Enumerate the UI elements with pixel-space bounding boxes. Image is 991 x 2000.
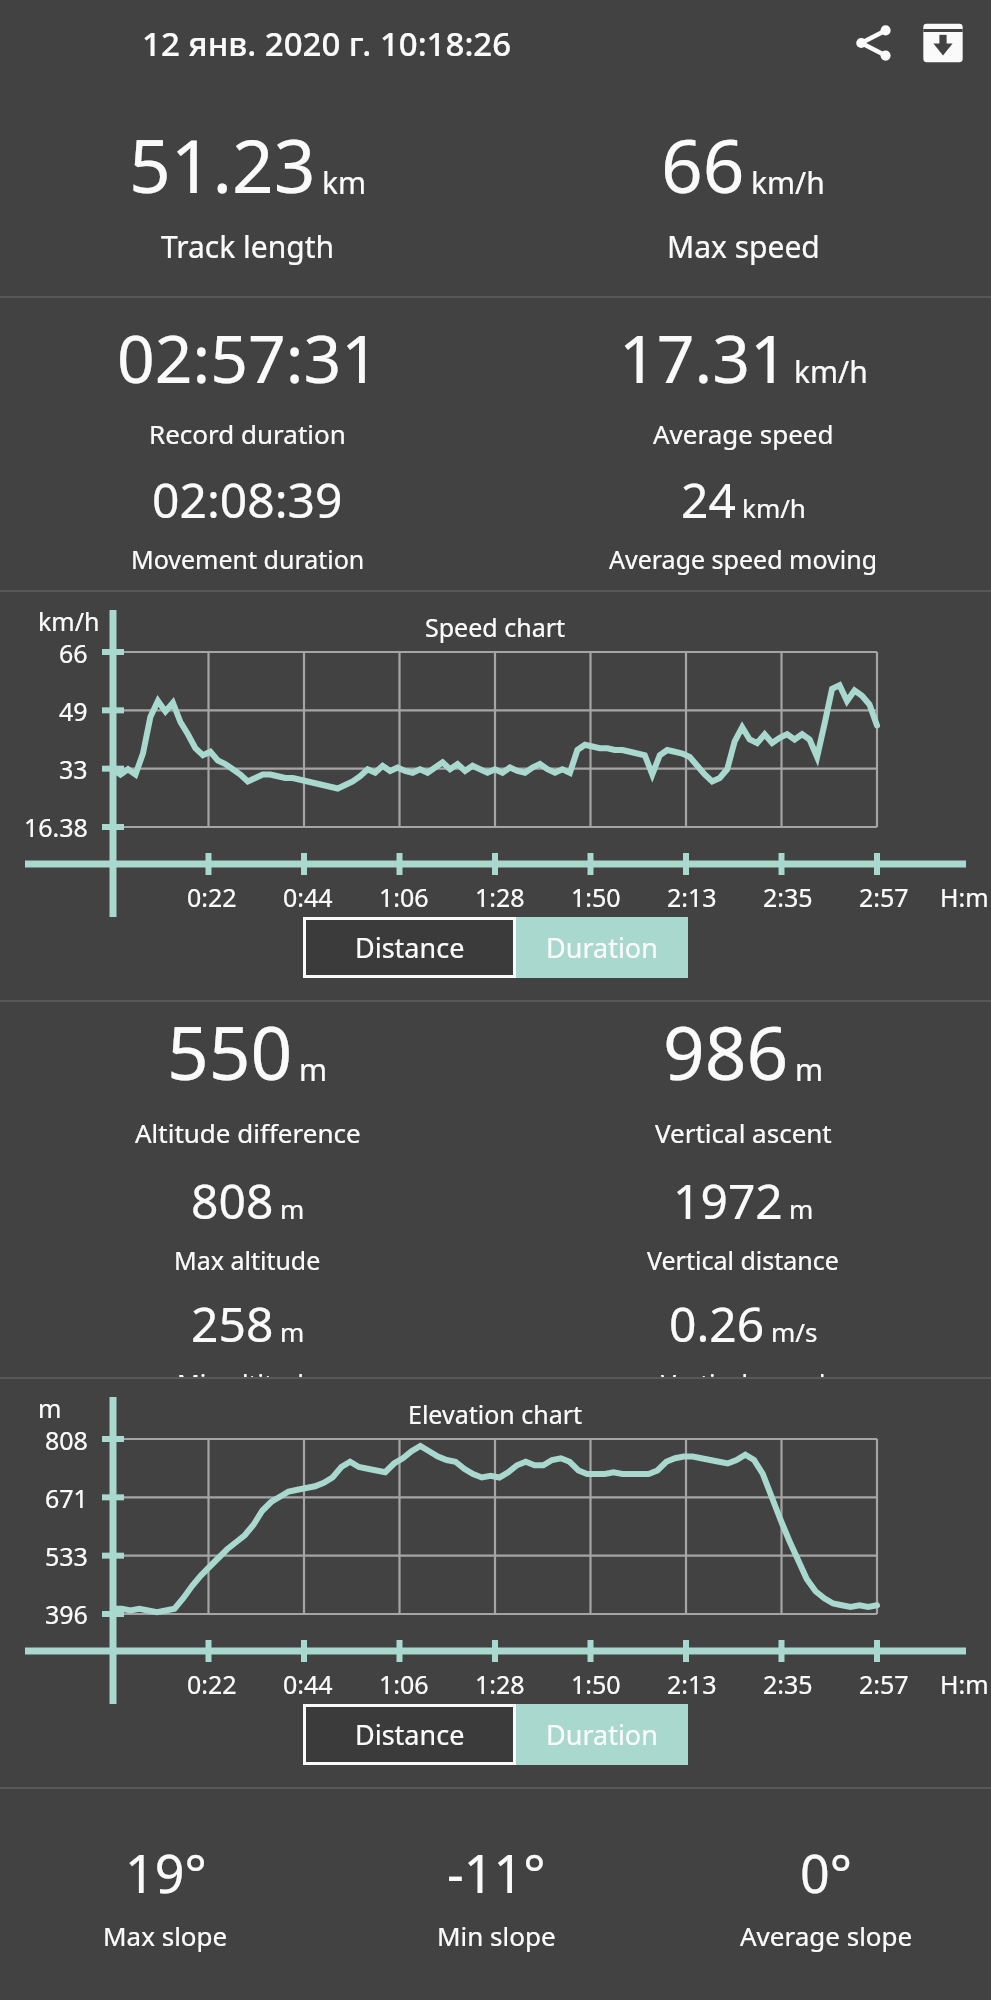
staticText: 02:08:39 — [152, 467, 343, 532]
staticText: m — [38, 1391, 62, 1425]
staticText: 1:50 — [571, 1667, 621, 1701]
staticText: 808 — [191, 1168, 274, 1233]
staticText: Duration — [546, 1716, 658, 1753]
staticText: m — [795, 1049, 824, 1090]
staticText: km/h — [751, 162, 825, 203]
button[interactable]: Distance — [303, 917, 516, 978]
staticText: 396 — [45, 1597, 88, 1631]
staticText: 0° — [800, 1837, 853, 1908]
staticText: Max slope — [103, 1918, 228, 1953]
staticText: 0:44 — [283, 880, 333, 914]
staticText: Min altitude — [177, 1366, 318, 1377]
staticText: Vertical ascent — [655, 1115, 832, 1150]
staticText: 17.31 — [619, 312, 788, 402]
staticText: 19° — [125, 1837, 207, 1908]
staticText: Speed chart — [425, 610, 566, 644]
staticText: 1972 — [673, 1168, 783, 1233]
staticText: Duration — [546, 929, 658, 966]
staticText: 2:13 — [667, 1667, 717, 1701]
staticText: -11° — [447, 1837, 546, 1908]
staticText: km/h — [38, 604, 100, 638]
staticText: m — [299, 1049, 328, 1090]
staticText: 2:35 — [763, 1667, 813, 1701]
button[interactable]: Save — [913, 13, 973, 73]
button[interactable]: Share — [843, 13, 903, 73]
staticText: Max altitude — [174, 1243, 321, 1277]
staticText: 24 — [681, 467, 736, 532]
staticText: 2:57 — [859, 880, 909, 914]
staticText: Average speed moving — [609, 542, 878, 576]
staticText: 2:13 — [667, 880, 717, 914]
staticText: 49 — [59, 694, 88, 728]
staticText: 0.26 — [669, 1291, 765, 1356]
staticText: 808 — [45, 1423, 88, 1457]
staticText: km/h — [794, 351, 868, 392]
staticText: Distance — [355, 929, 465, 966]
staticText: 1:06 — [379, 880, 429, 914]
staticText: Max speed — [667, 226, 820, 267]
staticText: 02:57:31 — [117, 312, 379, 402]
staticText: m/s — [771, 1314, 818, 1349]
staticText: Movement duration — [131, 542, 365, 576]
staticText: Altitude difference — [135, 1115, 361, 1150]
button[interactable]: Distance — [303, 1704, 516, 1765]
staticText: 2:35 — [763, 880, 813, 914]
staticText: 258 — [191, 1291, 274, 1356]
staticText: 12 янв. 2020 г. 10:18:26 — [142, 21, 512, 66]
staticText: Elevation chart — [408, 1397, 583, 1431]
staticText: 33 — [59, 752, 88, 786]
staticText: 66 — [59, 636, 88, 670]
staticText: 671 — [45, 1481, 88, 1515]
staticText: km/h — [742, 490, 806, 525]
staticText: 2:57 — [859, 1667, 909, 1701]
staticText: Average slope — [740, 1918, 913, 1953]
button[interactable]: Duration — [516, 1704, 688, 1765]
staticText: Vertical speed — [661, 1366, 826, 1377]
staticText: 16.38 — [24, 810, 88, 844]
staticText: m — [280, 1191, 305, 1226]
staticText: 1:28 — [475, 880, 525, 914]
staticText: H:m — [940, 1667, 989, 1701]
staticText: Average speed — [653, 416, 834, 451]
staticText: km — [322, 162, 367, 203]
staticText: 533 — [45, 1539, 88, 1573]
staticText: m — [789, 1191, 814, 1226]
staticText: m — [280, 1314, 305, 1349]
staticText: Record duration — [149, 416, 346, 451]
staticText: 51.23 — [129, 115, 316, 214]
staticText: 66 — [661, 115, 745, 214]
staticText: 0:22 — [187, 1667, 237, 1701]
staticText: 1:06 — [379, 1667, 429, 1701]
button[interactable]: Duration — [516, 917, 688, 978]
staticText: 986 — [663, 1002, 789, 1101]
staticText: Min slope — [437, 1918, 556, 1953]
staticText: 1:50 — [571, 880, 621, 914]
staticText: 1:28 — [475, 1667, 525, 1701]
staticText: 550 — [167, 1002, 293, 1101]
staticText: Distance — [355, 1716, 465, 1753]
staticText: 0:22 — [187, 880, 237, 914]
staticText: Vertical distance — [647, 1243, 839, 1277]
staticText: 0:44 — [283, 1667, 333, 1701]
staticText: H:m — [940, 880, 989, 914]
staticText: Track length — [161, 226, 335, 267]
